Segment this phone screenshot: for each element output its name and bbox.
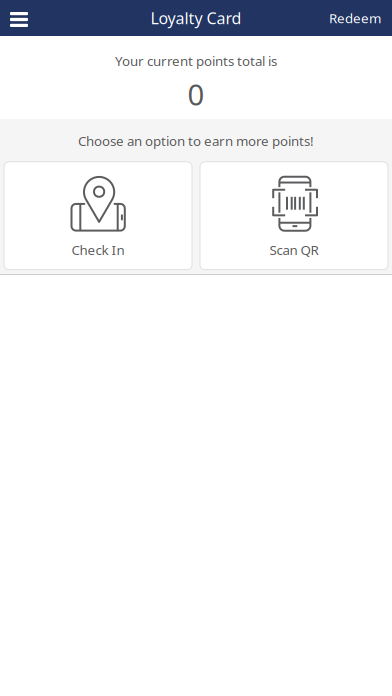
staticText: Your current points total is — [115, 52, 277, 70]
button[interactable]: Redeem — [329, 0, 392, 36]
staticText: Loyalty Card — [150, 7, 241, 29]
staticText: 0 — [187, 75, 204, 114]
staticText: Scan QR — [269, 241, 318, 259]
staticText: Check In — [71, 241, 124, 259]
button[interactable]: Check In — [4, 162, 192, 270]
button[interactable]: Menu — [0, 0, 38, 36]
staticText: Choose an option to earn more points! — [78, 132, 314, 150]
button[interactable]: Scan QR — [200, 162, 388, 270]
staticText: Redeem — [329, 9, 381, 27]
